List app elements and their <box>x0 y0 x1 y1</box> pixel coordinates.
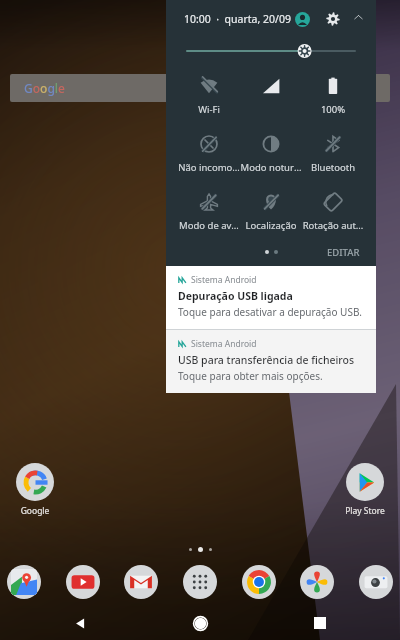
staticText: Sistema Android <box>191 338 257 350</box>
button[interactable]: Início <box>185 608 215 638</box>
staticText: Google <box>24 80 65 96</box>
button[interactable]: Localização <box>240 192 302 232</box>
button[interactable]: Modo de avião <box>178 192 240 232</box>
button[interactable]: EDITAR <box>323 242 364 262</box>
staticText: Sistema Android <box>191 274 257 286</box>
staticText: Não incomod… <box>178 161 240 174</box>
staticText: Google <box>4 505 66 517</box>
staticText: EDITAR <box>327 246 360 258</box>
staticText: Modo noturno <box>240 161 302 174</box>
button[interactable]: YouTube <box>65 564 101 600</box>
staticText: Toque para obter mais opções. <box>178 369 323 383</box>
staticText: Localização <box>240 219 302 232</box>
staticText: Bluetooth <box>302 161 364 174</box>
button[interactable]: Chrome <box>241 564 277 600</box>
staticText: Wi-Fi <box>178 103 240 116</box>
button[interactable]: Google <box>10 74 390 102</box>
button[interactable]: 100% <box>302 76 364 116</box>
staticText: Toque para desativar a depuração USB. <box>178 305 362 319</box>
button[interactable]: Definições <box>322 8 344 30</box>
staticText: Rotação auto… <box>302 219 364 232</box>
staticText: Play Store <box>334 505 396 517</box>
button[interactable]: Sistema Android <box>166 266 376 329</box>
button[interactable]: Fotos <box>299 564 335 600</box>
staticText: Modo de avião <box>178 219 240 232</box>
staticText: Depuração USB ligada <box>178 289 293 303</box>
button[interactable]: Wi-Fi <box>178 76 240 116</box>
button[interactable]: Brilho <box>178 38 364 64</box>
button[interactable]: Sistema Android <box>166 330 376 393</box>
button[interactable] <box>240 76 302 116</box>
button[interactable]: Google <box>4 463 66 517</box>
staticText: USB para transferência de ficheiros <box>178 353 355 367</box>
button[interactable]: Gmail <box>123 564 159 600</box>
button[interactable]: Não incomod… <box>178 134 240 174</box>
button[interactable]: Todas as apps <box>182 564 218 600</box>
button[interactable]: Play Store <box>334 463 396 517</box>
button[interactable]: Utilizador <box>291 8 313 30</box>
button[interactable]: Recentes <box>305 608 335 638</box>
staticText: 100% <box>302 103 364 116</box>
staticText: 10:00 · quarta, 20/09 <box>184 12 291 26</box>
button[interactable]: Câmara <box>358 564 394 600</box>
button[interactable]: Maps <box>6 564 42 600</box>
button[interactable]: Rotação auto… <box>302 192 364 232</box>
button[interactable]: Bluetooth <box>302 134 364 174</box>
button[interactable]: Fechar <box>353 8 364 30</box>
button[interactable]: Voltar <box>65 608 95 638</box>
button[interactable]: Modo noturno <box>240 134 302 174</box>
